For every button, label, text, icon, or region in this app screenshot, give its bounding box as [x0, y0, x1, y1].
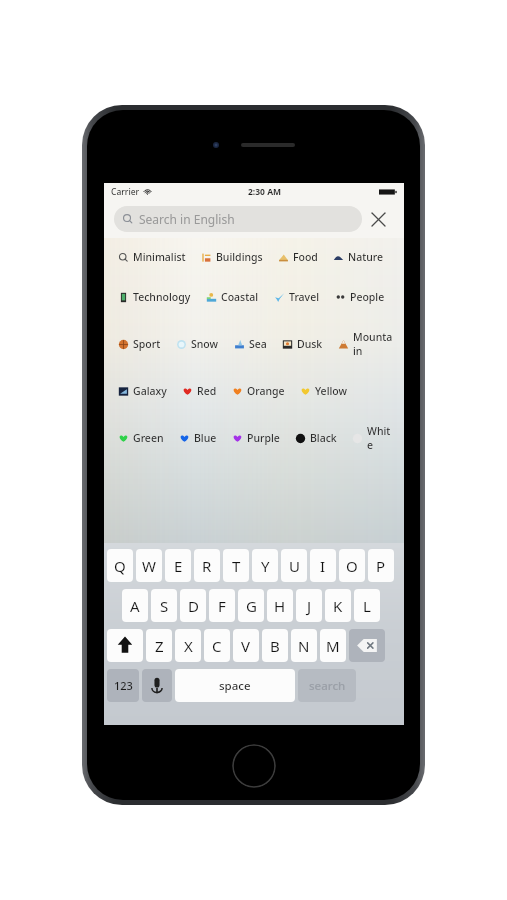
staticText: Y [261, 556, 270, 576]
button[interactable]: Purple [230, 429, 281, 447]
staticText: Green [133, 431, 164, 445]
button[interactable]: O [339, 549, 365, 582]
button[interactable]: N [291, 629, 317, 662]
button[interactable]: S [151, 589, 177, 622]
button[interactable]: V [233, 629, 259, 662]
button[interactable]: Mountain [336, 328, 396, 360]
button[interactable]: E [165, 549, 191, 582]
staticText: Search in English [139, 211, 235, 227]
staticText: A [130, 596, 140, 616]
button[interactable]: Sea [232, 335, 268, 353]
button[interactable]: L [354, 589, 380, 622]
staticText: Purple [247, 431, 280, 445]
button[interactable]: B [262, 629, 288, 662]
button[interactable]: M [320, 629, 346, 662]
button[interactable]: Z [146, 629, 172, 662]
staticText: L [363, 596, 371, 616]
button[interactable]: Y [252, 549, 278, 582]
button[interactable]: People [333, 288, 386, 306]
button[interactable]: K [325, 589, 351, 622]
staticText: Snow [191, 337, 219, 351]
staticText: People [350, 290, 385, 304]
button[interactable]: Home [232, 744, 276, 788]
button[interactable]: A [122, 589, 148, 622]
staticText: White [367, 424, 395, 452]
button[interactable]: Buildings [199, 248, 264, 266]
button[interactable]: Green [116, 429, 165, 447]
button[interactable]: J [296, 589, 322, 622]
button[interactable]: Shift [107, 629, 143, 662]
button[interactable]: H [267, 589, 293, 622]
button[interactable]: C [204, 629, 230, 662]
staticText: Buildings [216, 250, 263, 264]
staticText: Carrier [111, 186, 140, 198]
staticText: 123 [114, 678, 133, 693]
button[interactable]: T [223, 549, 249, 582]
staticText: Sport [133, 337, 161, 351]
button[interactable]: space [175, 669, 295, 702]
staticText: P [376, 556, 386, 576]
button[interactable]: Search in English [114, 206, 362, 232]
staticText: M [326, 636, 340, 656]
button[interactable]: Nature [331, 248, 385, 266]
button[interactable]: White [350, 422, 396, 454]
staticText: Mountain [353, 330, 395, 358]
staticText: Travel [289, 290, 320, 304]
staticText: Minimalist [133, 250, 186, 264]
button[interactable]: Sport [116, 335, 162, 353]
button[interactable]: Coastal [204, 288, 260, 306]
staticText: Dusk [297, 337, 323, 351]
button[interactable]: Food [276, 248, 319, 266]
button[interactable]: Clear search [362, 204, 394, 234]
button[interactable]: Technology [116, 288, 192, 306]
staticText: space [219, 678, 251, 694]
staticText: Sea [249, 337, 267, 351]
button[interactable]: P [368, 549, 394, 582]
button[interactable]: R [194, 549, 220, 582]
staticText: Z [155, 636, 164, 656]
staticText: Nature [348, 250, 384, 264]
staticText: Food [293, 250, 318, 264]
button[interactable]: Dusk [280, 335, 324, 353]
button[interactable]: Yellow [298, 382, 348, 400]
staticText: J [307, 596, 312, 616]
staticText: Red [197, 384, 217, 398]
button[interactable]: Dictation [142, 669, 172, 702]
button[interactable]: search [298, 669, 356, 702]
staticText: Blue [194, 431, 217, 445]
button[interactable]: Q [107, 549, 133, 582]
staticText: F [218, 596, 226, 616]
staticText: X [184, 636, 193, 656]
staticText: D [188, 596, 199, 616]
button[interactable]: D [180, 589, 206, 622]
button[interactable]: Black [293, 429, 338, 447]
button[interactable]: G [238, 589, 264, 622]
staticText: search [309, 678, 346, 694]
button[interactable]: Travel [272, 288, 321, 306]
button[interactable]: U [281, 549, 307, 582]
staticText: I [320, 556, 326, 576]
button[interactable]: Orange [230, 382, 286, 400]
button[interactable]: Red [180, 382, 218, 400]
staticText: Coastal [221, 290, 259, 304]
staticText: K [333, 596, 343, 616]
button[interactable]: Minimalist [116, 248, 187, 266]
staticText: B [270, 636, 280, 656]
button[interactable]: Blue [177, 429, 218, 447]
staticText: Orange [247, 384, 285, 398]
button[interactable]: F [209, 589, 235, 622]
staticText: G [246, 596, 257, 616]
staticText: R [202, 556, 212, 576]
staticText: E [174, 556, 183, 576]
button[interactable]: Snow [174, 335, 220, 353]
button[interactable]: Galaxy [116, 382, 168, 400]
button[interactable]: W [136, 549, 162, 582]
staticText: N [298, 636, 310, 656]
button[interactable]: X [175, 629, 201, 662]
staticText: W [142, 556, 156, 576]
button[interactable]: I [310, 549, 336, 582]
staticText: V [241, 636, 251, 656]
button[interactable]: Backspace [349, 629, 385, 662]
button[interactable]: 123 [107, 669, 139, 702]
staticText: H [274, 596, 286, 616]
